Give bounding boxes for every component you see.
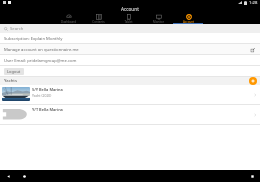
staticText: Logout — [7, 69, 21, 74]
staticText: S/Y Bella Marina — [32, 87, 63, 92]
button[interactable]: Manage account on questionnaire.me — [0, 44, 260, 55]
staticText: Account — [183, 20, 194, 24]
button[interactable]: Account — [173, 12, 203, 24]
other: Recent apps — [250, 174, 255, 179]
other: Back — [6, 174, 11, 179]
staticText: User Email: pridelamgroup@me.com — [4, 58, 77, 64]
button[interactable]: Y/T Bella Marina — [0, 105, 260, 125]
staticText: Contents — [92, 20, 105, 24]
button[interactable]: Tablet — [113, 12, 143, 24]
staticText: Yachts — [4, 78, 17, 84]
staticText: 1:28 — [249, 0, 258, 5]
button[interactable]: Search — [0, 24, 260, 33]
staticText: Search — [10, 26, 24, 32]
button[interactable]: User Email: pridelamgroup@me.com — [0, 55, 260, 66]
staticText: Subscription: Explain Monthly — [4, 36, 63, 42]
other: Open external link — [251, 48, 255, 52]
button[interactable]: Monitor — [143, 12, 173, 24]
staticText: Tablet — [124, 20, 133, 24]
button[interactable]: S/Y Bella Marina — [0, 85, 260, 105]
other: Home — [22, 174, 27, 179]
staticText: Manage account on questionnaire.me — [4, 47, 79, 53]
staticText: Dashboard — [61, 20, 76, 24]
button[interactable]: Add yacht — [249, 77, 257, 85]
staticText: Account — [121, 6, 139, 12]
button[interactable]: Dashboard — [53, 12, 83, 24]
button[interactable]: Logout — [4, 68, 24, 75]
button[interactable]: Contents — [83, 12, 113, 24]
button[interactable]: Subscription: Explain Monthly — [0, 33, 260, 44]
staticText: Y/T Bella Marina — [32, 107, 63, 112]
staticText: Monitor — [153, 20, 164, 24]
staticText: Yacht (2020) — [32, 93, 52, 98]
